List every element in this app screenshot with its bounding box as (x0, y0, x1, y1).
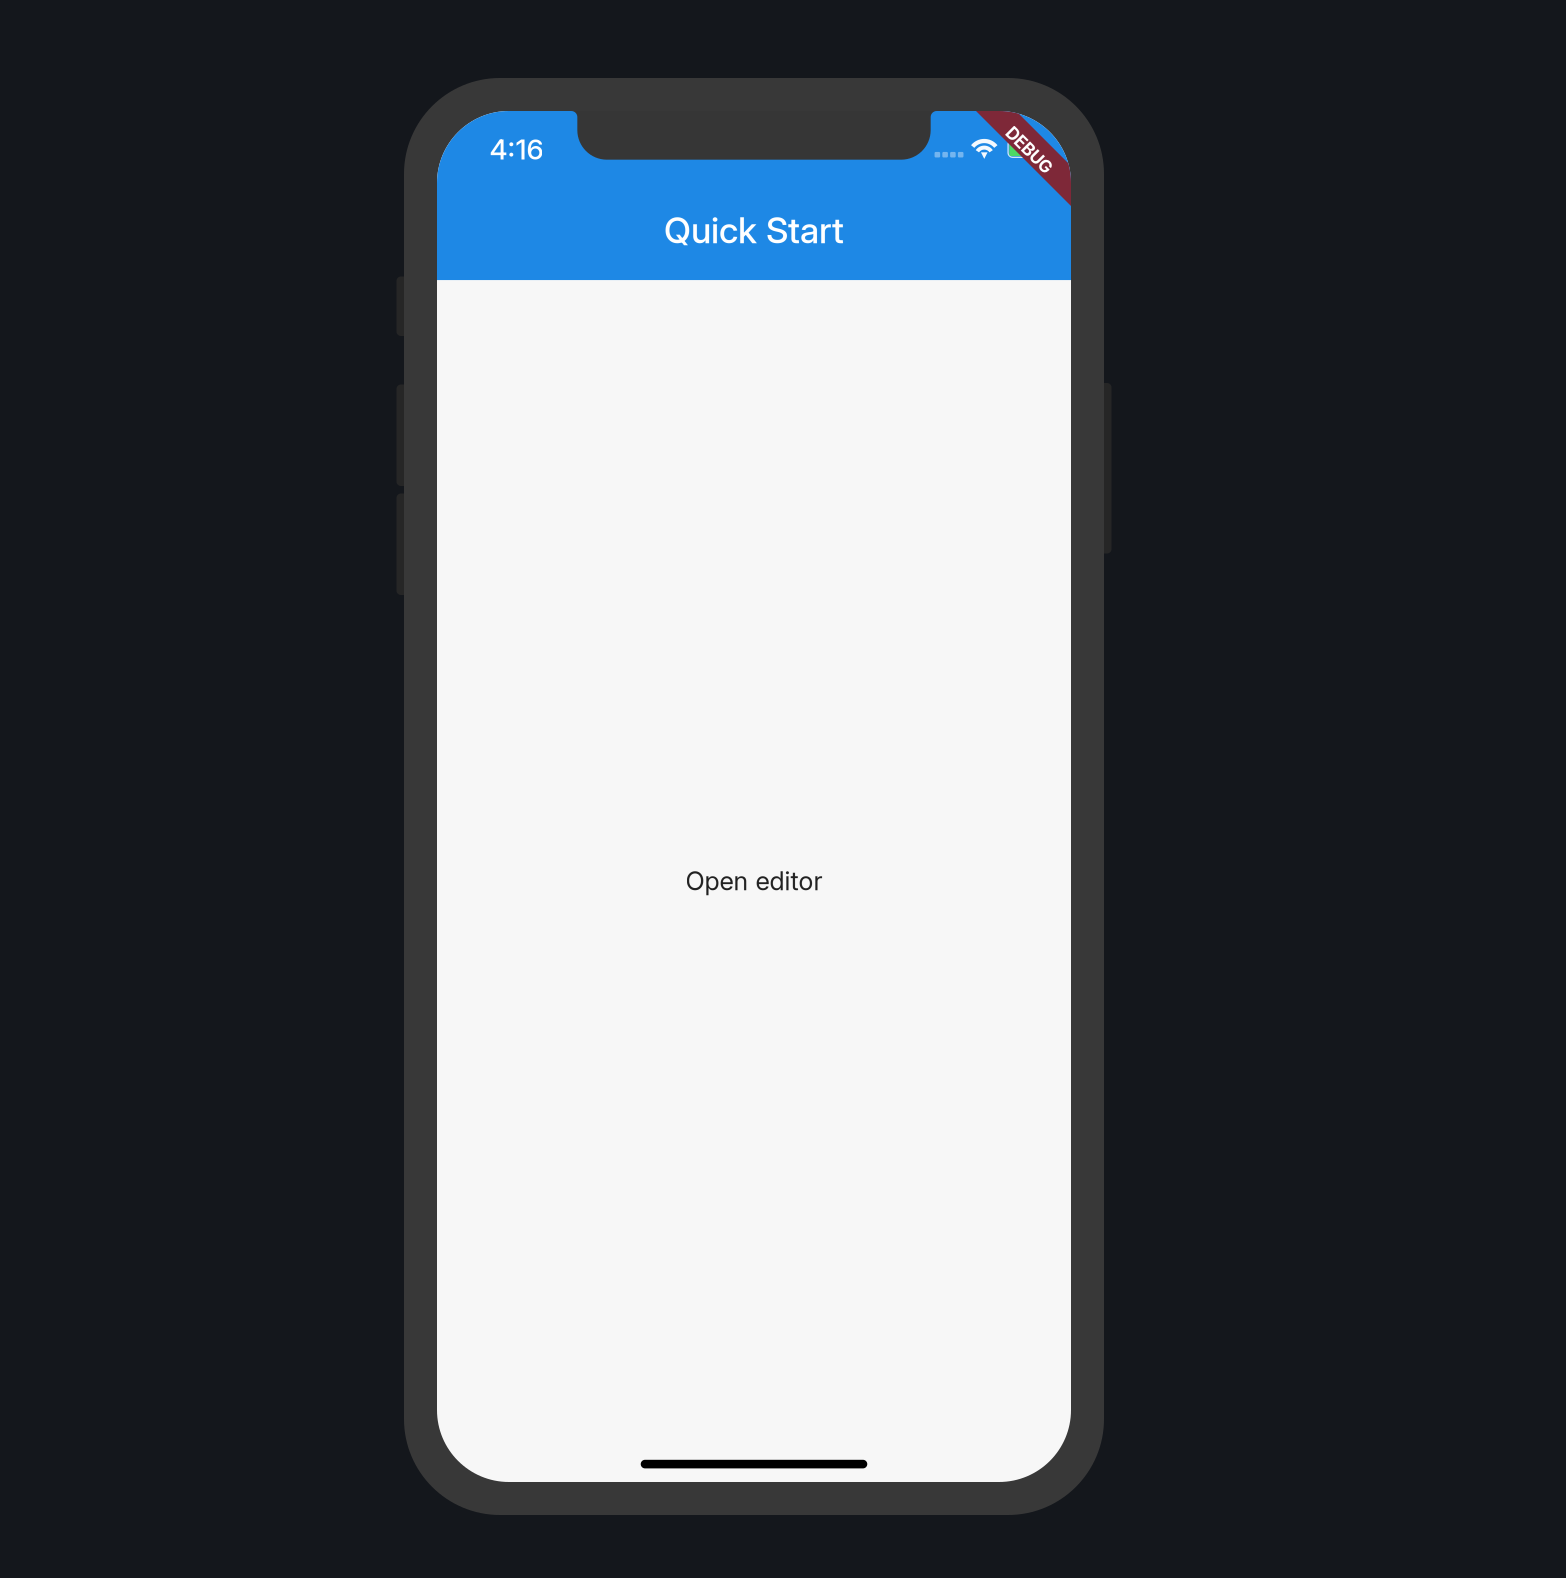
staticText: 4:16 (489, 132, 543, 166)
staticText: Quick Start (664, 209, 844, 252)
staticText: Open editor (685, 866, 822, 896)
staticText: DEBUG (1000, 140, 1058, 161)
button[interactable]: Open editor (437, 280, 1071, 1482)
button[interactable]: Quick Start (437, 183, 1071, 278)
